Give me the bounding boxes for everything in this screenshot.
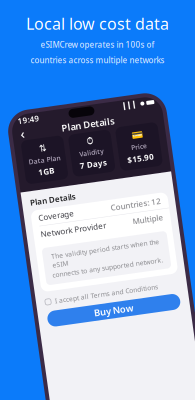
staticText: 19:49 [38,105,60,115]
staticText: Plan Details [81,117,135,129]
staticText: connects to any supported network. [51,263,163,272]
staticText: Countries: 12 [118,203,169,214]
staticText: $15.90 [142,158,169,169]
staticText: Local low cost data [26,13,169,34]
staticText: 7 Days [94,158,121,168]
staticText: Price [147,148,163,157]
staticText: The validity period starts when the eSIM [53,244,162,262]
staticText: I accept all Terms and Conditions [50,289,154,298]
staticText: Network Provider [45,220,111,231]
staticText: Multiple [138,220,169,231]
staticText: 1GB [52,158,68,169]
staticText: eSIMCrew operates in 100s of [40,39,154,50]
button[interactable]: Buy Now [40,303,174,319]
staticText: Coverage [45,203,81,214]
staticText: countries across multiple networks [30,55,164,65]
staticText: Data Plan [44,148,76,156]
staticText: Validity [95,147,120,156]
staticText: Plan Details [39,187,85,198]
staticText: Buy Now [87,304,127,317]
